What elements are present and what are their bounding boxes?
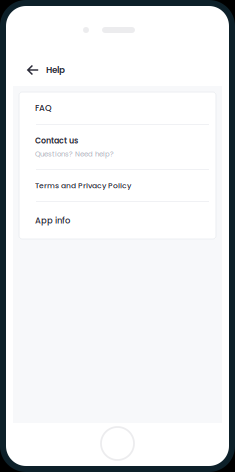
staticText: Terms and Privacy Policy — [35, 180, 131, 191]
staticText: Help — [46, 64, 65, 76]
staticText: Questions? Need help? — [35, 149, 114, 159]
button[interactable]: Contact us — [19, 125, 216, 169]
button[interactable]: App info — [19, 202, 216, 239]
staticText: FAQ — [35, 102, 52, 114]
button[interactable]: Terms and Privacy Policy — [19, 170, 216, 201]
button[interactable]: Back — [26, 59, 40, 81]
staticText: Contact us — [35, 135, 78, 146]
button[interactable]: FAQ — [19, 92, 216, 124]
staticText: App info — [35, 215, 70, 226]
